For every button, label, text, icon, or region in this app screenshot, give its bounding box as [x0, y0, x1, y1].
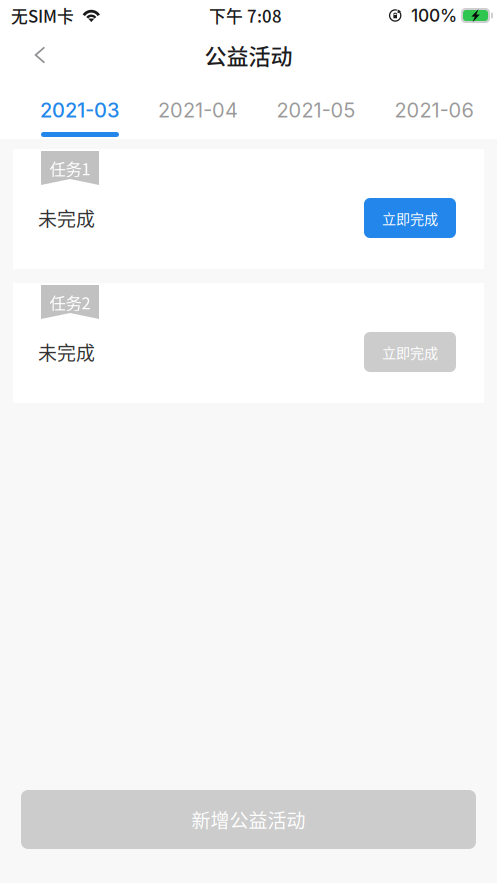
button[interactable]: 新增公益活动: [21, 790, 476, 849]
staticText: 公益活动: [204, 39, 292, 71]
button[interactable]: 2021-05: [257, 85, 375, 139]
staticText: 未完成: [38, 338, 95, 366]
button[interactable]: 2021-03: [21, 85, 139, 139]
button[interactable]: 立即完成: [364, 332, 456, 372]
staticText: 2021-04: [158, 98, 238, 122]
staticText: 100%: [411, 5, 457, 26]
staticText: 任务1: [49, 156, 90, 180]
staticText: 2021-03: [40, 98, 120, 122]
button[interactable]: 2021-06: [375, 85, 493, 139]
button[interactable]: 返回: [14, 30, 66, 86]
staticText: 新增公益活动: [191, 806, 305, 833]
button[interactable]: 2021-04: [139, 85, 257, 139]
staticText: 任务2: [49, 290, 90, 314]
staticText: 2021-05: [276, 98, 355, 122]
staticText: 立即完成: [382, 342, 438, 362]
button[interactable]: 立即完成: [364, 198, 456, 238]
staticText: 2021-06: [394, 98, 473, 122]
staticText: 未完成: [38, 204, 95, 232]
staticText: 立即完成: [382, 208, 438, 228]
staticText: 无SIM卡: [11, 3, 74, 28]
staticText: 下午 7:08: [209, 3, 282, 28]
